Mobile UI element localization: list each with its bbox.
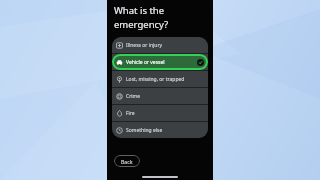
staticText: Vehicle or vessel xyxy=(126,59,165,66)
button[interactable]: Illness or injury xyxy=(112,37,208,53)
staticText: Illness or injury xyxy=(126,42,163,49)
button[interactable]: Vehicle or vessel xyxy=(112,54,208,70)
button[interactable]: Crime xyxy=(112,88,208,104)
button[interactable]: Back xyxy=(114,155,140,167)
button[interactable]: Something else xyxy=(112,122,208,138)
staticText: Fire xyxy=(126,110,135,117)
staticText: What is the xyxy=(114,4,165,17)
button[interactable]: Fire xyxy=(112,105,208,121)
staticText: emergency? xyxy=(114,18,169,31)
staticText: Something else xyxy=(126,127,163,134)
staticText: Lost, missing, or trapped xyxy=(126,76,185,83)
staticText: Crime xyxy=(126,93,141,100)
staticText: Back xyxy=(121,158,133,165)
button[interactable]: Lost, missing, or trapped xyxy=(112,71,208,87)
